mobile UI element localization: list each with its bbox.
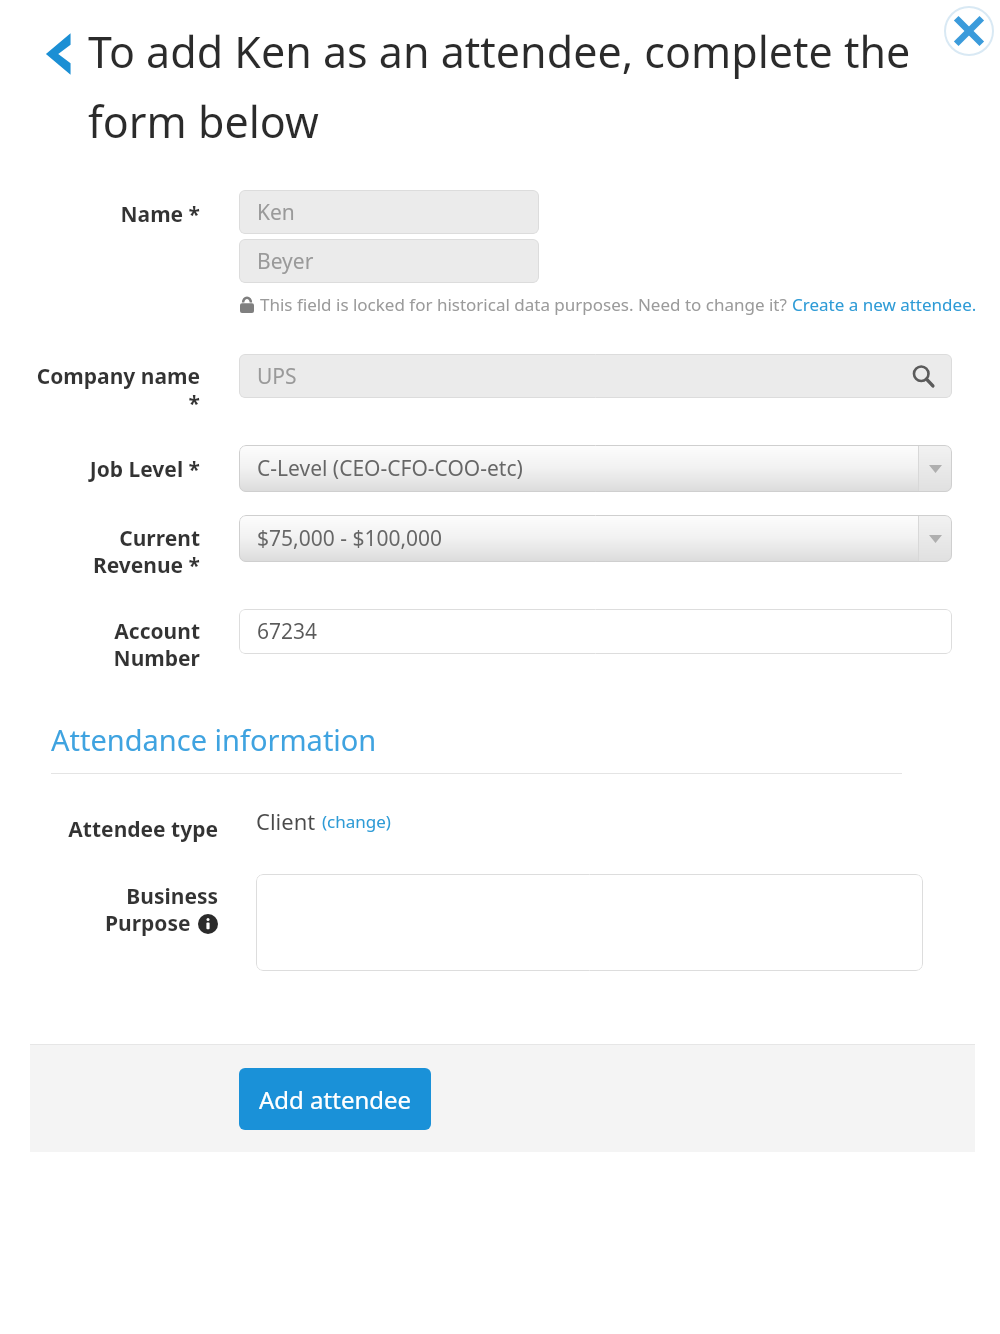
- button[interactable]: [256, 874, 923, 971]
- button[interactable]: Business purpose info: [198, 914, 218, 934]
- button[interactable]: Back: [38, 28, 82, 80]
- button[interactable]: 67234: [239, 609, 952, 654]
- staticText: Beyer: [257, 247, 314, 276]
- staticText: Attendee type: [0, 815, 218, 844]
- staticText: Purpose: [105, 909, 191, 938]
- button[interactable]: (change): [322, 810, 391, 833]
- staticText: UPS: [257, 362, 297, 391]
- staticText: Current Revenue *: [0, 524, 200, 579]
- button[interactable]: C-Level (CEO-CFO-COO-etc): [239, 445, 952, 492]
- staticText: Add attendee: [259, 1083, 412, 1116]
- staticText: This field is locked for historical data…: [260, 293, 792, 316]
- staticText: Name *: [0, 200, 200, 229]
- button[interactable]: Create a new attendee.: [792, 293, 977, 316]
- staticText: C-Level (CEO-CFO-COO-etc): [257, 454, 523, 483]
- button[interactable]: Add attendee: [239, 1068, 431, 1130]
- staticText: Job Level *: [0, 455, 200, 484]
- staticText: 67234: [257, 617, 318, 646]
- staticText: $75,000 - $100,000: [257, 524, 443, 553]
- staticText: Account Number: [0, 617, 200, 672]
- staticText: Ken: [257, 198, 295, 227]
- staticText: Company name *: [0, 362, 200, 417]
- staticText: Attendance information: [51, 720, 377, 759]
- button[interactable]: UPS: [239, 354, 952, 398]
- staticText: Client: [256, 806, 316, 836]
- staticText: To add Ken as an attendee, complete the …: [88, 22, 911, 151]
- button[interactable]: Ken: [239, 190, 539, 234]
- staticText: Business: [0, 882, 218, 911]
- button[interactable]: Close: [944, 6, 994, 56]
- button[interactable]: Beyer: [239, 239, 539, 283]
- button[interactable]: $75,000 - $100,000: [239, 515, 952, 562]
